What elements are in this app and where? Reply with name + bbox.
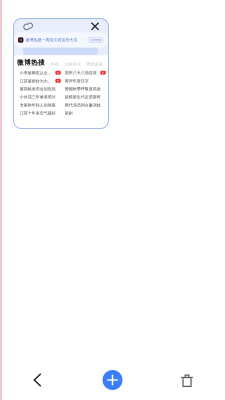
button[interactable]: Delete: [157, 358, 217, 400]
button[interactable]: 国庆八天八地连放: [65, 69, 106, 77]
staticText: 两岸年度汉字: [65, 78, 89, 83]
staticText: 小伙花三年修老照片: [20, 95, 56, 99]
button[interactable]: 小李被网友认出来了: [20, 69, 61, 77]
staticText: 超模新生代走进新时: [65, 95, 101, 99]
staticText: 要闻速递: [86, 62, 102, 67]
staticText: 江苏暴雨转为大暴雨: [20, 78, 53, 83]
button[interactable]: 新剧: [65, 109, 106, 117]
staticText: 热: [57, 79, 60, 82]
button[interactable]: 最高检发布会回应热: [20, 85, 61, 93]
button[interactable]: 江苏暴雨转为大暴雨: [20, 77, 61, 85]
staticText: 热: [57, 71, 60, 74]
button[interactable]: 江苏十年来空气最好: [20, 109, 61, 117]
staticText: 微博热搜: [17, 58, 45, 67]
button[interactable]: Add: [82, 358, 142, 400]
button[interactable]: 文娱热点: [65, 62, 81, 67]
button[interactable]: 微博热搜一周后又有这些大瓜: [14, 32, 108, 47]
staticText: 国庆八天八地连放: [65, 70, 97, 75]
button[interactable]: 小伙花三年修老照片: [20, 93, 61, 101]
button[interactable]: 热搜: [51, 62, 59, 67]
staticText: 两代演员同台飙演技: [65, 103, 101, 108]
button[interactable]: 超模新生代走进新时: [65, 93, 106, 101]
staticText: 新剧: [65, 111, 73, 116]
staticText: 警惕秋季呼吸道高发: [65, 86, 101, 91]
staticText: 热搜: [51, 62, 59, 67]
button[interactable]: Close: [88, 19, 102, 33]
button[interactable]: 两代演员同台飙演技: [65, 101, 106, 109]
button[interactable]: 警惕秋季呼吸道高发: [65, 85, 106, 93]
staticText: 江苏十年来空气最好: [20, 111, 56, 116]
button[interactable]: Back: [7, 358, 67, 400]
button[interactable]: 两岸年度汉字: [65, 77, 106, 85]
staticText: 微博热搜一周后又有这些大瓜: [26, 37, 78, 42]
button[interactable]: 专家称年轻人别熬夜: [20, 101, 61, 109]
staticText: 热: [102, 71, 105, 74]
staticText: 最高检发布会回应热: [20, 86, 56, 91]
button[interactable]: 要闻速递: [86, 62, 102, 67]
staticText: 文娱热点: [65, 62, 81, 67]
staticText: 专家称年轻人别熬夜: [20, 103, 56, 108]
staticText: 立即查看: [90, 38, 102, 42]
staticText: 小李被网友认出来了: [20, 70, 53, 75]
